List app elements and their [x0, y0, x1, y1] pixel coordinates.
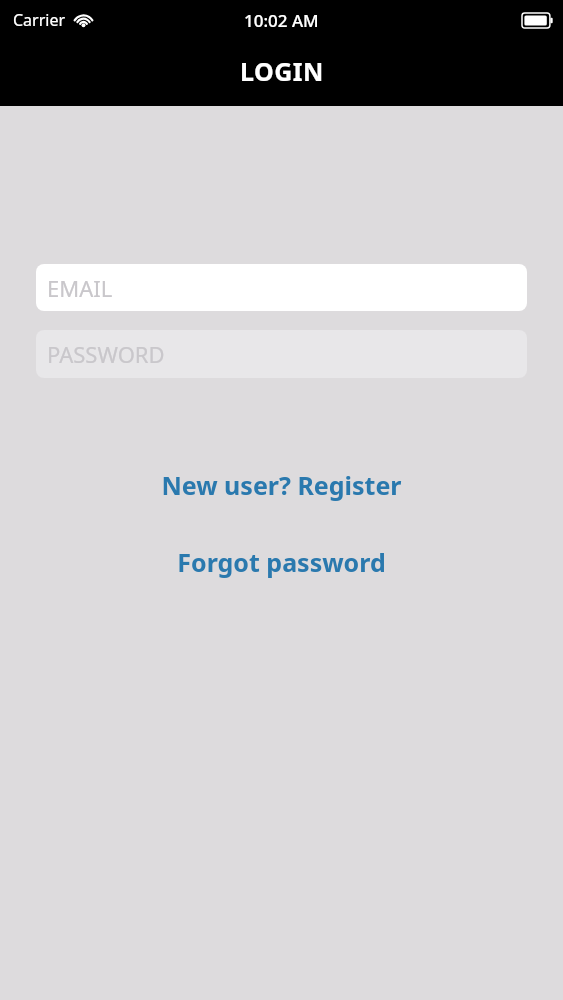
button[interactable]: Forgot password — [0, 540, 563, 584]
staticText: New user? Register — [161, 468, 402, 502]
staticText: LOGIN — [240, 54, 324, 88]
staticText: EMAIL — [47, 273, 113, 303]
staticText: 10:02 AM — [244, 9, 319, 32]
button[interactable]: New user? Register — [0, 463, 563, 507]
other: Wi-Fi signal — [73, 12, 94, 27]
button[interactable]: PASSWORD — [36, 330, 527, 378]
staticText: PASSWORD — [47, 339, 165, 369]
button[interactable]: EMAIL — [36, 264, 527, 311]
staticText: Forgot password — [177, 545, 386, 579]
staticText: Carrier — [13, 9, 66, 31]
other: Battery full — [522, 13, 553, 28]
